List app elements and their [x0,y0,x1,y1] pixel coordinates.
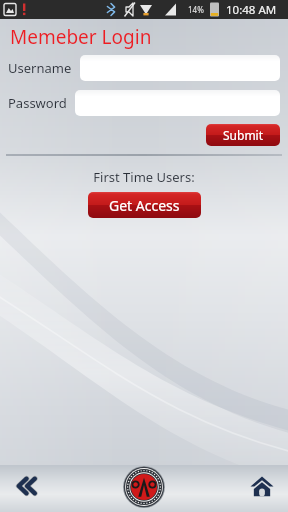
staticText: 10:48 AM [226,2,277,18]
button[interactable]: Home [242,466,282,506]
staticText: Get Access [109,196,180,215]
button[interactable]: Back [6,466,46,506]
button[interactable] [80,55,280,81]
staticText: Password [8,94,67,112]
staticText: Submit [223,127,264,143]
staticText: 14% [188,4,204,15]
button[interactable]: Submit [206,124,280,146]
button[interactable]: Get Access [88,192,201,218]
staticText: Memeber Login [10,24,152,50]
staticText: First Time Users: [0,168,288,186]
button[interactable]: AGC logo [122,465,166,509]
staticText: Username [8,59,72,77]
button[interactable] [75,90,280,116]
